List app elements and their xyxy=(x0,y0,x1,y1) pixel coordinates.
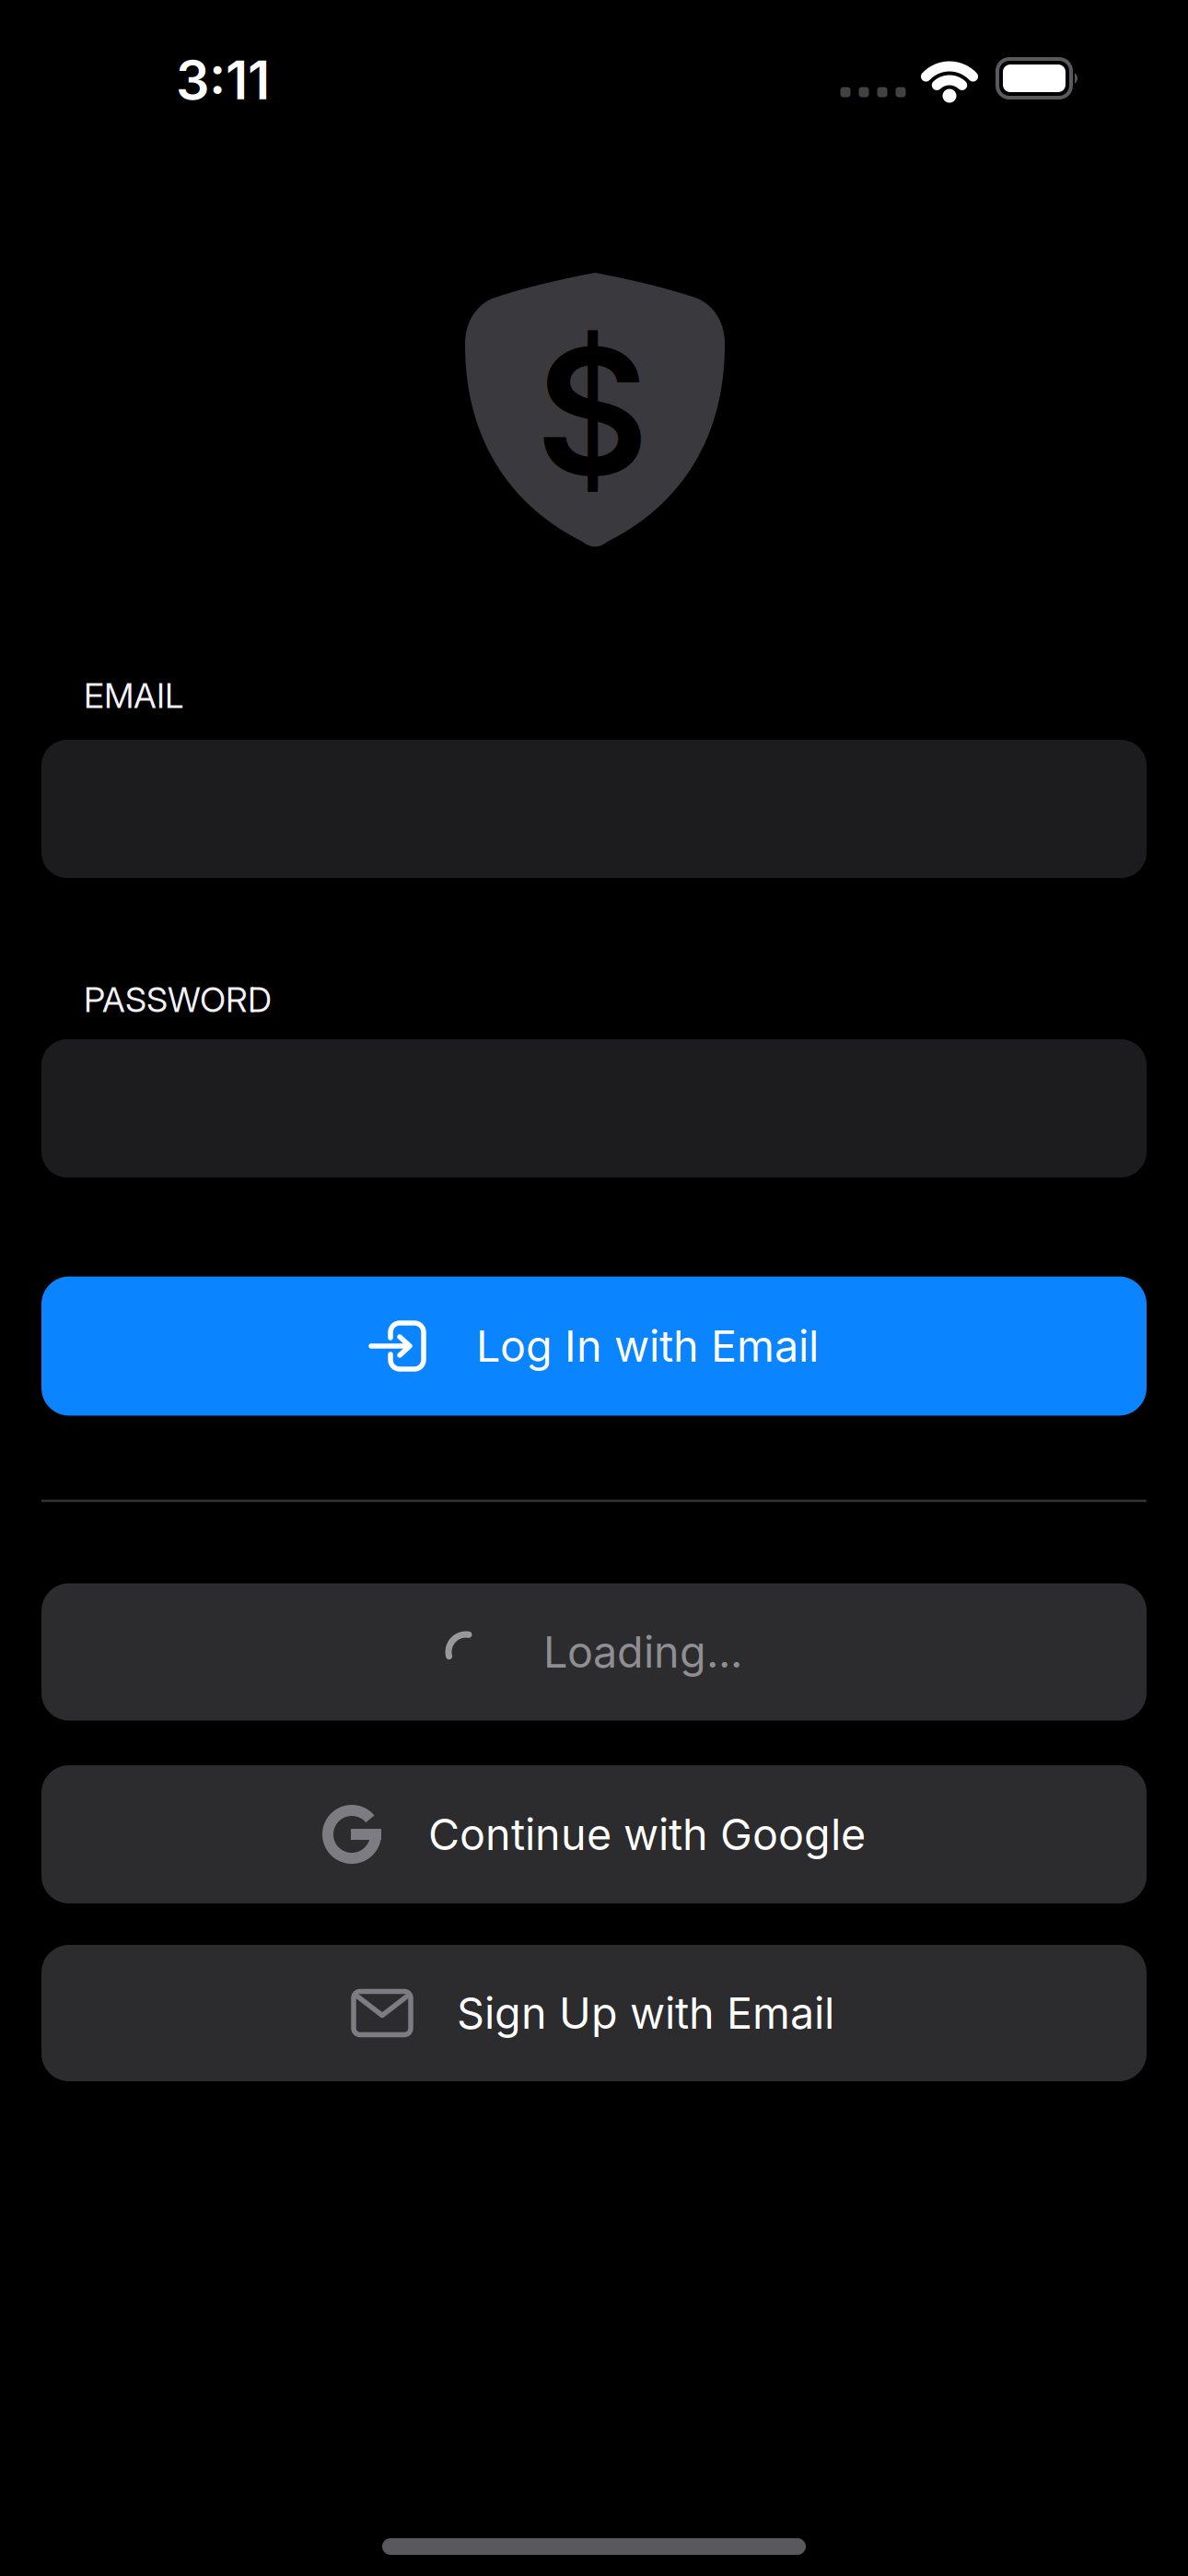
staticText: Loading... xyxy=(543,1627,742,1677)
button[interactable]: Continue with Google xyxy=(41,1765,1147,1903)
staticText: EMAIL xyxy=(84,675,183,716)
staticText: Continue with Google xyxy=(428,1809,866,1860)
button[interactable]: Sign Up with Email xyxy=(41,1945,1147,2081)
staticText: 3:11 xyxy=(176,49,270,111)
staticText: PASSWORD xyxy=(84,979,272,1020)
staticText: Sign Up with Email xyxy=(457,1988,834,2039)
staticText: Log In with Email xyxy=(476,1321,819,1371)
button[interactable]: Log In with Email xyxy=(41,1276,1147,1416)
button[interactable]: Password xyxy=(41,1039,1147,1177)
button[interactable]: Loading xyxy=(41,1583,1147,1721)
staticText: $ xyxy=(536,308,649,514)
